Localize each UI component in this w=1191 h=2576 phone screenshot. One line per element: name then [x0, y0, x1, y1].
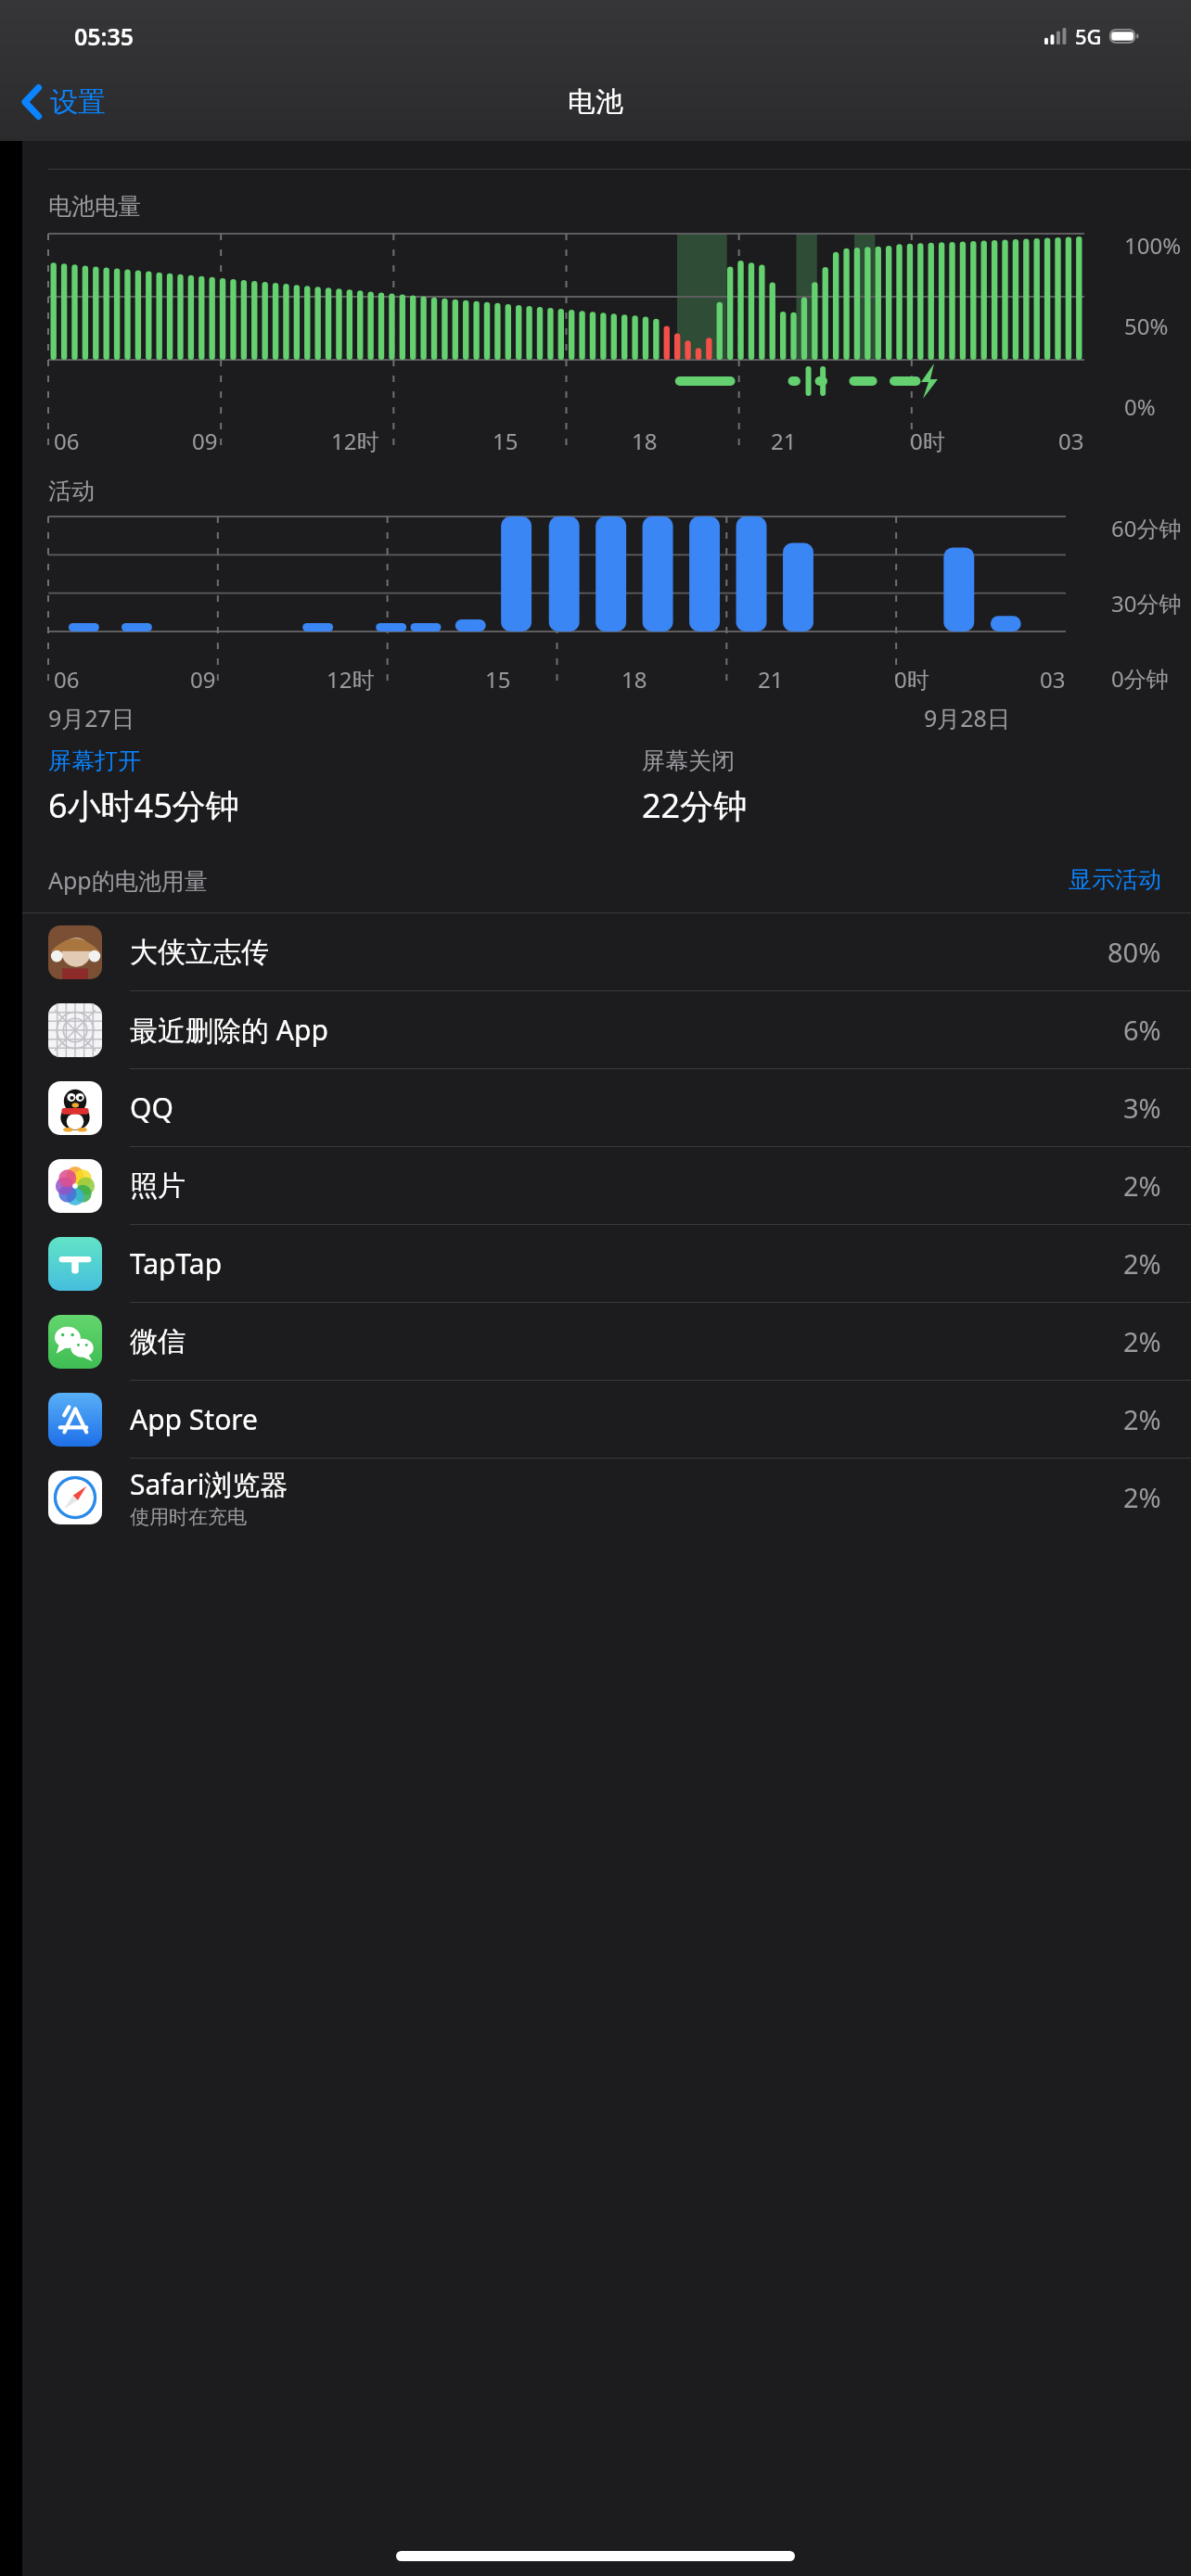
staticText: 03 [1040, 664, 1066, 695]
staticText: 最近删除的 App [130, 1011, 328, 1049]
staticText: 03 [1058, 426, 1084, 456]
staticText: 06 [54, 426, 80, 456]
staticText: 100% [1124, 230, 1182, 261]
button[interactable]: App Store [22, 1381, 1191, 1458]
staticText: 微信 [130, 1324, 186, 1359]
staticText: 12时 [331, 426, 379, 456]
staticText: 09 [192, 426, 218, 456]
staticText: 05:35 [74, 20, 134, 52]
staticText: 21 [771, 426, 797, 456]
staticText: 0时 [910, 426, 945, 456]
staticText: 设置 [50, 84, 106, 120]
staticText: 电池 [568, 84, 623, 120]
staticText: 5G [1075, 22, 1102, 50]
staticText: 2% [1123, 1323, 1161, 1359]
staticText: 2% [1123, 1401, 1161, 1437]
staticText: 屏幕打开 [48, 746, 141, 775]
staticText: 0时 [894, 664, 929, 695]
staticText: 15 [493, 426, 519, 456]
button[interactable]: 微信 [22, 1303, 1191, 1380]
staticText: Safari浏览器 [130, 1465, 288, 1503]
button[interactable]: Safari浏览器 [22, 1459, 1191, 1536]
staticText: QQ [130, 1089, 173, 1127]
button[interactable]: 设置 [17, 75, 111, 129]
staticText: 显示活动 [1069, 865, 1161, 894]
staticText: 电池电量 [48, 192, 141, 221]
staticText: TapTap [130, 1244, 223, 1282]
staticText: 15 [485, 664, 511, 695]
button[interactable]: 显示活动 [1065, 861, 1165, 898]
staticText: 2% [1123, 1167, 1161, 1204]
staticText: 18 [621, 664, 647, 695]
button[interactable]: TapTap [22, 1225, 1191, 1302]
staticText: 9月28日 [924, 702, 1010, 733]
staticText: 06 [54, 664, 80, 695]
staticText: 0% [1124, 391, 1156, 422]
staticText: 80% [1108, 934, 1161, 970]
staticText: 6小时45分钟 [48, 783, 239, 828]
button[interactable]: 大侠立志传 [22, 913, 1191, 990]
staticText: 22分钟 [642, 783, 748, 828]
staticText: 6% [1123, 1012, 1161, 1048]
button[interactable]: 最近删除的 App [22, 991, 1191, 1068]
button[interactable]: 照片 [22, 1147, 1191, 1224]
staticText: 屏幕关闭 [642, 746, 735, 775]
staticText: 使用时在充电 [130, 1505, 247, 1529]
staticText: 21 [758, 664, 784, 695]
staticText: 2% [1123, 1479, 1161, 1515]
staticText: 活动 [48, 477, 95, 505]
staticText: App的电池用量 [48, 864, 208, 896]
staticText: 3% [1123, 1090, 1161, 1126]
staticText: App Store [130, 1400, 259, 1438]
button[interactable]: QQ [22, 1069, 1191, 1146]
staticText: 2% [1123, 1245, 1161, 1282]
staticText: 09 [190, 664, 216, 695]
staticText: 30分钟 [1111, 588, 1182, 618]
staticText: 大侠立志传 [130, 935, 269, 970]
staticText: 50% [1124, 311, 1169, 341]
staticText: 照片 [130, 1168, 186, 1204]
staticText: 60分钟 [1111, 513, 1182, 543]
staticText: 9月27日 [48, 702, 134, 733]
staticText: 18 [632, 426, 658, 456]
staticText: 12时 [327, 664, 375, 695]
staticText: 0分钟 [1111, 663, 1169, 694]
